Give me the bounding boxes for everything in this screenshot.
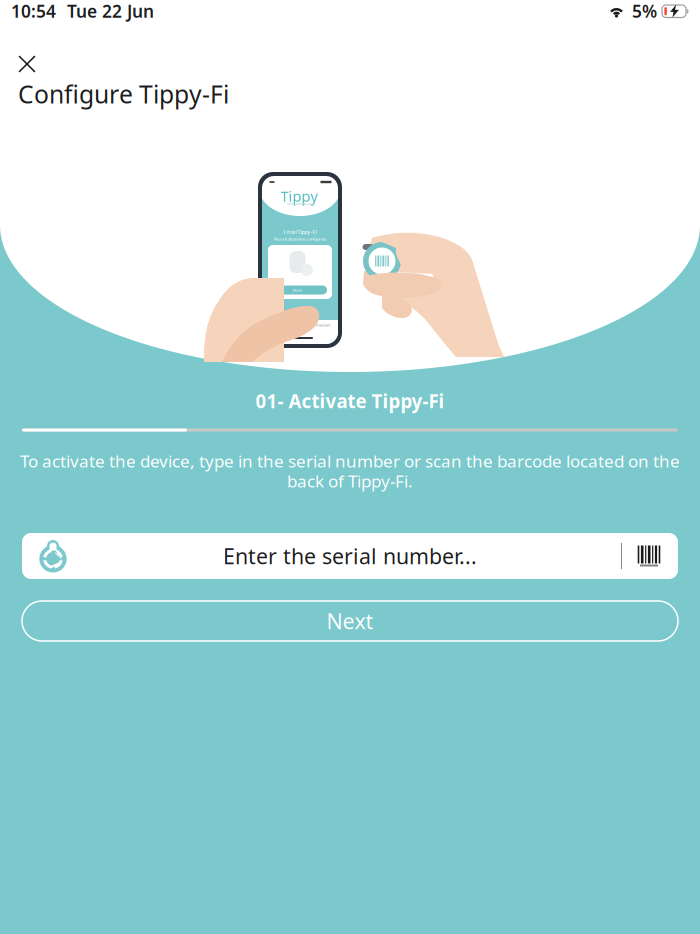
staticText: Configure Tippy-Fi — [18, 77, 229, 111]
staticText: Enter the serial number... — [223, 542, 477, 570]
button[interactable]: Enter the serial number... — [22, 533, 678, 579]
staticText: Next — [326, 607, 373, 635]
staticText: back of Tippy-Fi. — [287, 469, 413, 493]
staticText: 5% — [632, 0, 657, 22]
staticText: Nessun dispositivo configurato — [274, 236, 326, 242]
button[interactable]: Close — [10, 47, 44, 81]
staticText: I miei Tippy-Fi — [283, 228, 316, 236]
staticText: 10:54 — [11, 0, 56, 22]
staticText: Informazioni — [308, 322, 330, 328]
staticText: Inizia — [292, 287, 301, 293]
staticText: 01- Activate Tippy-Fi — [255, 388, 444, 414]
staticText: Tippy — [280, 186, 317, 206]
staticText: To activate the device, type in the seri… — [20, 449, 680, 473]
button[interactable]: Next — [22, 601, 678, 641]
staticText: Tue 22 Jun — [67, 0, 154, 22]
